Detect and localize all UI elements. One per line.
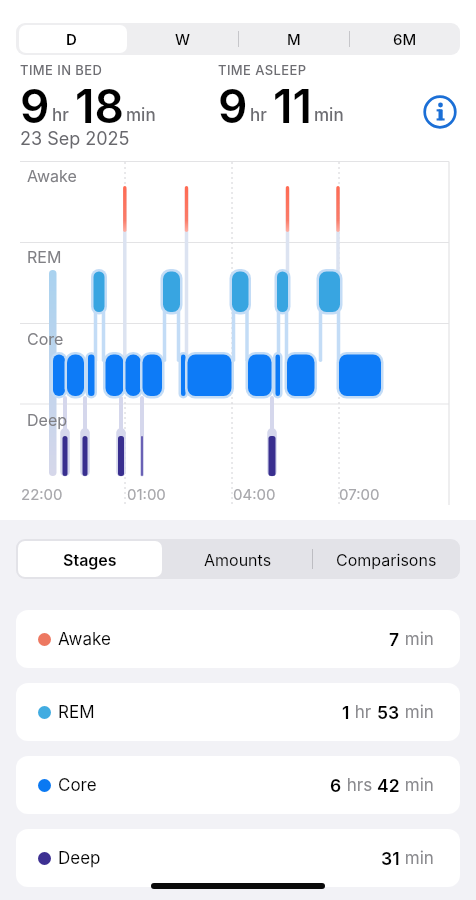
staticText: M bbox=[287, 30, 301, 48]
button[interactable]: REM bbox=[16, 683, 460, 741]
staticText: W bbox=[175, 30, 191, 48]
button[interactable]: Comparisons bbox=[312, 539, 460, 579]
button[interactable] bbox=[423, 95, 457, 129]
staticText: hrs bbox=[342, 775, 377, 796]
button[interactable]: W bbox=[127, 23, 238, 55]
staticText: 7 bbox=[389, 629, 400, 650]
button[interactable] bbox=[19, 25, 127, 53]
staticText: 01:00 bbox=[127, 485, 166, 503]
staticText: hr bbox=[350, 702, 377, 723]
staticText: min bbox=[314, 105, 344, 126]
staticText: 6M bbox=[393, 30, 417, 48]
staticText: REM bbox=[58, 702, 95, 723]
staticText: REM bbox=[27, 247, 62, 266]
staticText: 53 bbox=[377, 702, 400, 723]
staticText: min bbox=[400, 848, 434, 869]
staticText: TIME ASLEEP bbox=[218, 62, 307, 78]
button[interactable] bbox=[18, 541, 162, 577]
staticText: 6 bbox=[330, 775, 342, 796]
staticText: 42 bbox=[377, 775, 400, 796]
button[interactable]: M bbox=[238, 23, 349, 55]
staticText: min bbox=[126, 105, 156, 126]
staticText: Core bbox=[27, 329, 64, 348]
staticText: Deep bbox=[27, 410, 67, 429]
button[interactable]: Awake bbox=[16, 610, 460, 668]
staticText: Stages bbox=[63, 550, 117, 569]
staticText: Comparisons bbox=[336, 550, 437, 569]
staticText: Deep bbox=[58, 848, 101, 869]
staticText: min bbox=[400, 775, 434, 796]
staticText: hr bbox=[250, 105, 267, 126]
staticText: Amounts bbox=[204, 550, 272, 569]
staticText: 23 Sep 2025 bbox=[20, 128, 130, 150]
staticText: Awake bbox=[58, 629, 111, 650]
staticText: 11 bbox=[273, 78, 312, 134]
staticText: 9 bbox=[218, 78, 248, 134]
button[interactable]: Stages bbox=[16, 539, 164, 579]
staticText: Awake bbox=[27, 166, 77, 185]
staticText: 22:00 bbox=[21, 485, 63, 503]
staticText: min bbox=[400, 629, 434, 650]
button[interactable]: Deep bbox=[16, 829, 460, 887]
staticText: 18 bbox=[75, 78, 124, 134]
button[interactable]: Amounts bbox=[164, 539, 312, 579]
staticText: TIME IN BED bbox=[20, 62, 103, 78]
staticText: 9 bbox=[20, 78, 50, 134]
staticText: 1 bbox=[342, 702, 350, 723]
staticText: Core bbox=[58, 775, 97, 796]
staticText: hr bbox=[52, 105, 69, 126]
staticText: 07:00 bbox=[339, 485, 380, 503]
staticText: min bbox=[400, 702, 434, 723]
button[interactable]: 6M bbox=[349, 23, 460, 55]
button[interactable]: D bbox=[16, 23, 127, 55]
staticText: 31 bbox=[381, 848, 400, 869]
staticText: 04:00 bbox=[233, 485, 276, 503]
button[interactable]: Core bbox=[16, 756, 460, 814]
staticText: D bbox=[66, 30, 77, 48]
